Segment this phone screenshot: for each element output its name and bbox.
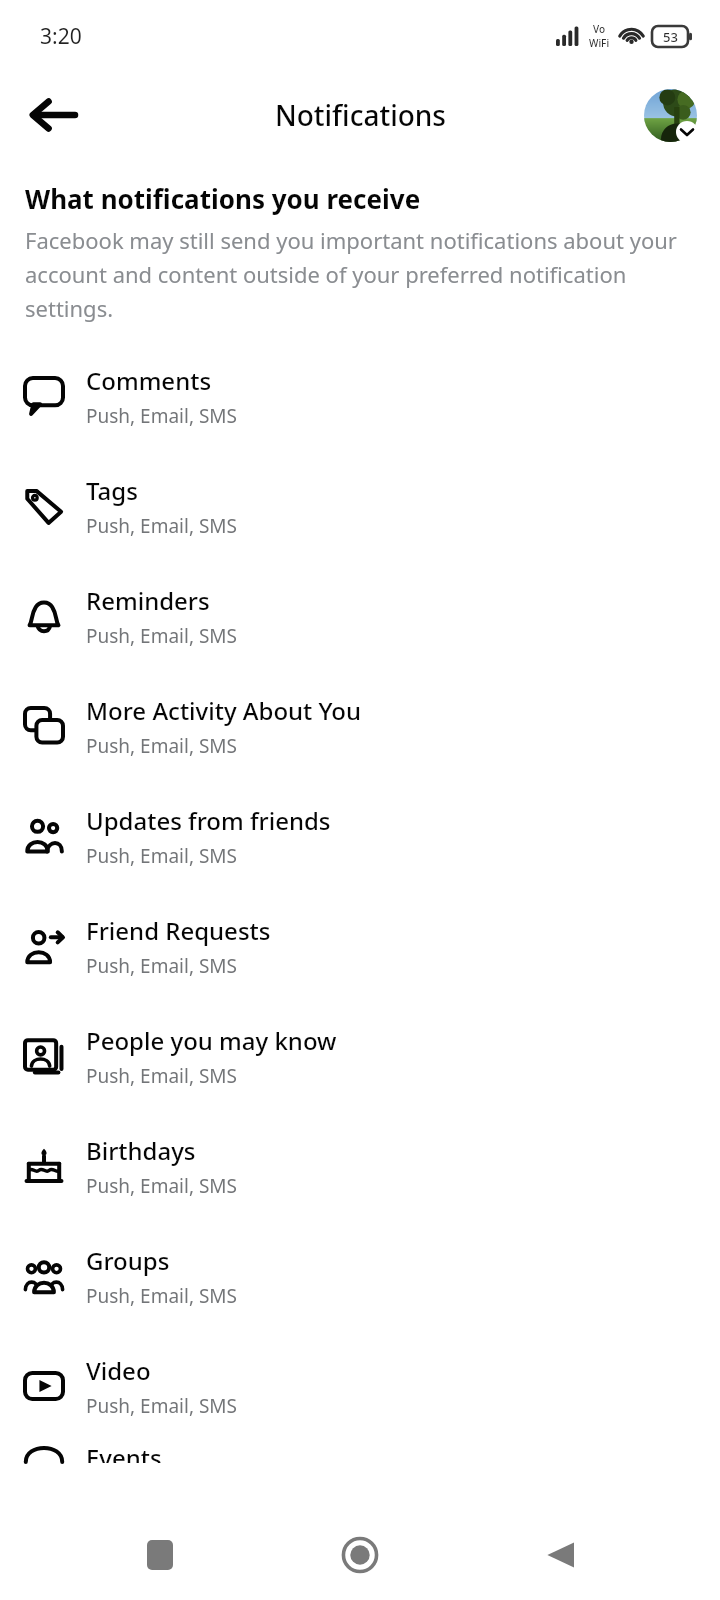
button[interactable]: Back — [18, 80, 88, 150]
staticText: Friend Requests — [86, 914, 271, 947]
staticText: More Activity About You — [86, 694, 362, 727]
staticText: WiFi — [589, 36, 610, 50]
staticText: Push, Email, SMS — [86, 1173, 238, 1199]
staticText: Push, Email, SMS — [86, 843, 238, 869]
staticText: Push, Email, SMS — [86, 733, 238, 759]
staticText: Facebook may still send you important no… — [25, 225, 695, 323]
staticText: Tags — [86, 474, 138, 507]
staticText: Push, Email, SMS — [86, 623, 238, 649]
button[interactable]: Tags — [0, 451, 720, 561]
button[interactable]: Events — [0, 1441, 720, 1463]
staticText: Comments — [86, 364, 212, 397]
staticText: Reminders — [86, 584, 210, 617]
button[interactable]: Home — [320, 1515, 400, 1595]
staticText: Push, Email, SMS — [86, 953, 238, 979]
button[interactable]: Groups — [0, 1221, 720, 1331]
staticText: Updates from friends — [86, 804, 331, 837]
button[interactable]: Updates from friends — [0, 781, 720, 891]
staticText: Notifications — [275, 96, 446, 134]
button[interactable]: Profile — [642, 87, 698, 143]
button[interactable]: Birthdays — [0, 1111, 720, 1221]
staticText: 3:20 — [40, 22, 82, 51]
staticText: 53 — [663, 28, 678, 46]
staticText: Video — [86, 1354, 151, 1387]
staticText: Push, Email, SMS — [86, 1283, 238, 1309]
button[interactable]: Reminders — [0, 561, 720, 671]
button[interactable]: Comments — [0, 341, 720, 451]
staticText: Vo — [593, 22, 606, 36]
staticText: Groups — [86, 1244, 170, 1277]
button[interactable]: Back — [520, 1515, 600, 1595]
button[interactable]: Recent apps — [120, 1515, 200, 1595]
staticText: Push, Email, SMS — [86, 513, 238, 539]
staticText: Push, Email, SMS — [86, 1393, 238, 1419]
staticText: Push, Email, SMS — [86, 403, 238, 429]
staticText: People you may know — [86, 1024, 337, 1057]
button[interactable]: People you may know — [0, 1001, 720, 1111]
staticText: Birthdays — [86, 1134, 196, 1167]
button[interactable]: Friend Requests — [0, 891, 720, 1001]
staticText: What notifications you receive — [25, 181, 421, 216]
staticText: Push, Email, SMS — [86, 1063, 238, 1089]
staticText: Events — [86, 1441, 162, 1463]
button[interactable]: More Activity About You — [0, 671, 720, 781]
button[interactable]: Video — [0, 1331, 720, 1441]
